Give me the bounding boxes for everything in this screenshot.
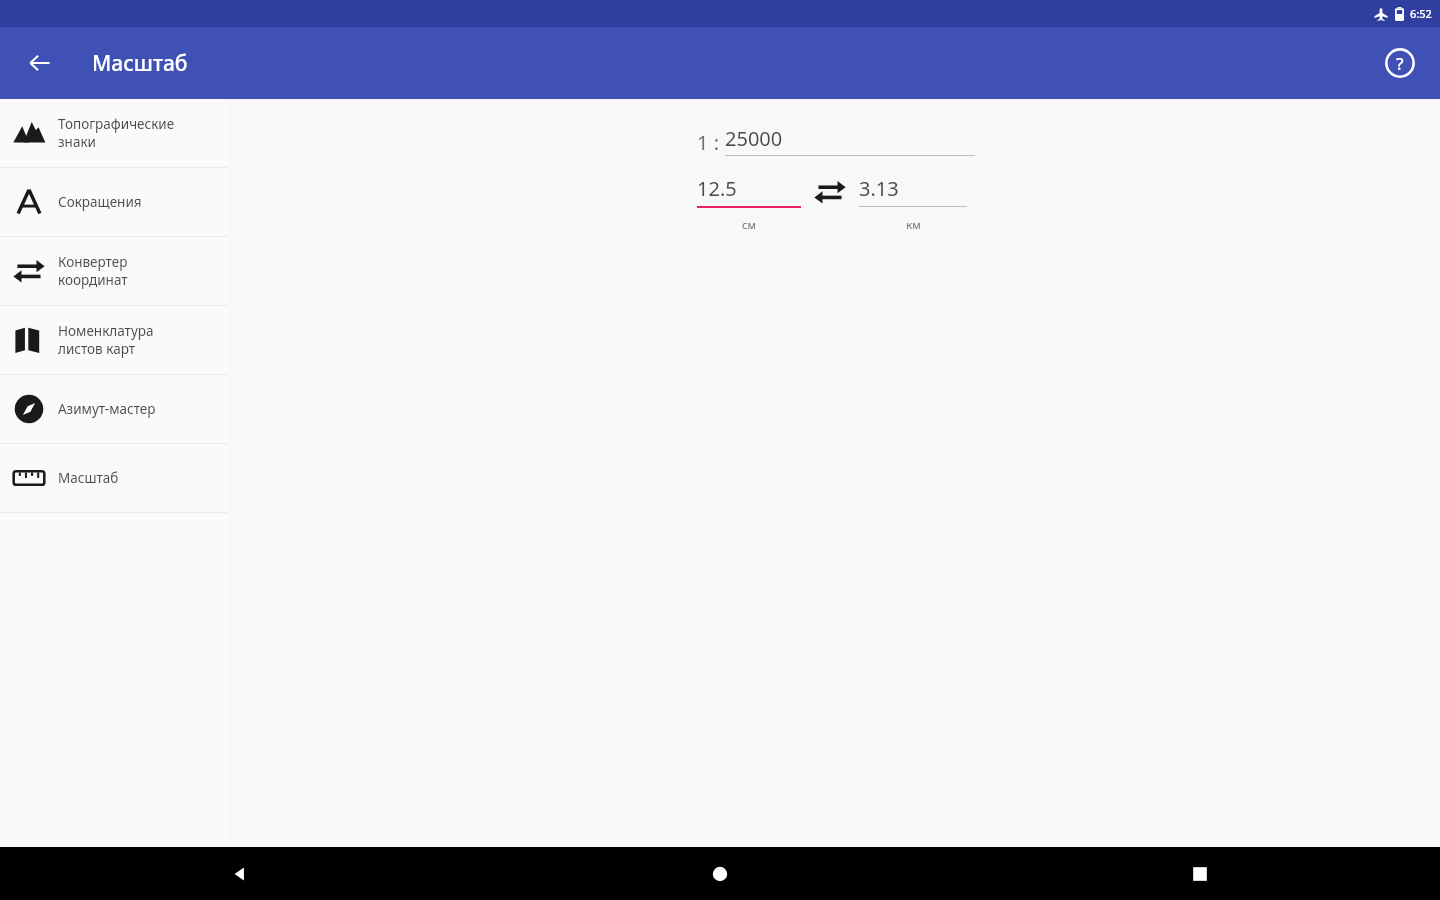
button[interactable]: Топографические [0, 99, 227, 167]
staticText: Масштаб [92, 49, 188, 78]
staticText: листов карт [58, 340, 136, 358]
button[interactable]: Back [16, 39, 64, 87]
staticText: Номенклатура [58, 322, 154, 340]
staticText: знаки [58, 133, 96, 151]
staticText: координат [58, 271, 128, 289]
staticText: Азимут-мастер [58, 400, 156, 418]
staticText: км [906, 217, 921, 232]
staticText: 1 : [697, 129, 725, 156]
button[interactable]: Swap units [813, 175, 847, 209]
staticText: см [742, 217, 756, 232]
button[interactable]: Азимут-мастер [0, 375, 227, 443]
button[interactable]: Recent apps [960, 847, 1440, 900]
staticText: ? [1396, 52, 1404, 75]
button[interactable]: 3.13 [859, 175, 967, 202]
button[interactable]: Сокращения [0, 168, 227, 236]
staticText: Топографические [58, 115, 175, 133]
button[interactable]: 12.5 [697, 175, 801, 202]
staticText: 6:52 [1410, 6, 1432, 21]
button[interactable]: Back [0, 847, 480, 900]
button[interactable]: Help [1376, 39, 1424, 87]
staticText: Конвертер [58, 253, 128, 271]
button[interactable]: Конвертер [0, 237, 227, 305]
button[interactable]: Номенклатура [0, 306, 227, 374]
staticText: Масштаб [58, 469, 119, 487]
staticText: Сокращения [58, 193, 142, 211]
button[interactable]: 25000 [725, 125, 783, 152]
button[interactable]: Масштаб [0, 444, 227, 512]
button[interactable]: Home [480, 847, 960, 900]
